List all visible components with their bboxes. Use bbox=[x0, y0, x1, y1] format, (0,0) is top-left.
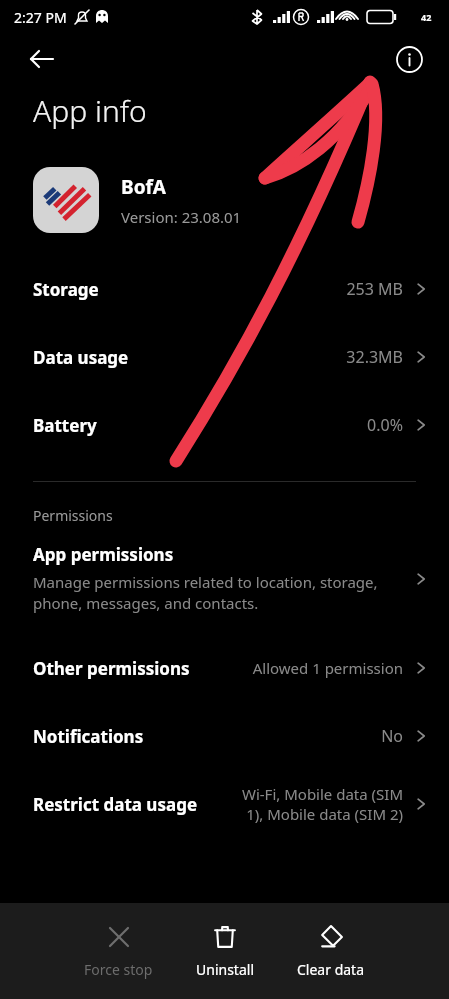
button[interactable]: Notifications bbox=[0, 702, 449, 770]
staticText: Wi-Fi, Mobile data (SIM 1), Mobile data … bbox=[241, 784, 403, 824]
button[interactable]: Other permissions bbox=[0, 634, 449, 702]
staticText: 253 MB bbox=[346, 278, 403, 300]
staticText: No bbox=[381, 725, 403, 747]
staticText: Manage permissions related to location, … bbox=[33, 572, 378, 614]
staticText: App info bbox=[33, 90, 147, 131]
staticText: 42 bbox=[421, 11, 432, 23]
button[interactable]: Back bbox=[20, 37, 64, 81]
button[interactable]: About bbox=[389, 39, 429, 79]
staticText: Notifications bbox=[33, 725, 144, 748]
staticText: Clear data bbox=[297, 960, 365, 979]
staticText: App permissions bbox=[33, 543, 174, 566]
staticText: Data usage bbox=[33, 346, 129, 369]
button[interactable]: App permissions bbox=[0, 539, 449, 618]
button[interactable]: Data usage bbox=[0, 323, 449, 391]
staticText: Uninstall bbox=[196, 960, 254, 979]
button[interactable]: Battery bbox=[0, 391, 449, 459]
button[interactable]: Restrict data usage bbox=[0, 770, 449, 838]
button[interactable]: Clear data bbox=[289, 918, 373, 985]
staticText: 0.0% bbox=[367, 414, 403, 436]
staticText: 32.3MB bbox=[346, 346, 403, 368]
button[interactable]: Uninstall bbox=[188, 918, 262, 985]
staticText: Force stop bbox=[84, 960, 153, 979]
staticText: 2:27 PM bbox=[14, 8, 67, 27]
staticText: Storage bbox=[33, 278, 99, 301]
staticText: Battery bbox=[33, 414, 97, 437]
staticText: Version: 23.08.01 bbox=[121, 207, 242, 227]
staticText: BofA bbox=[121, 174, 167, 200]
staticText: Restrict data usage bbox=[33, 793, 198, 816]
staticText: Permissions bbox=[33, 506, 113, 525]
button[interactable]: Force stop bbox=[76, 918, 161, 985]
button[interactable]: Storage bbox=[0, 255, 449, 323]
staticText: Allowed 1 permission bbox=[252, 658, 403, 678]
staticText: Other permissions bbox=[33, 657, 190, 680]
